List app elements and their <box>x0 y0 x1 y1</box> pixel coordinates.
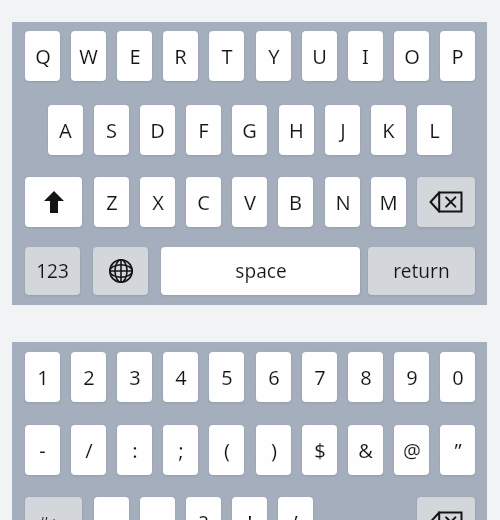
staticText: 8 <box>360 364 372 391</box>
button[interactable]: Q <box>25 31 60 81</box>
button[interactable]: Shift <box>25 177 82 227</box>
staticText: / <box>85 437 93 464</box>
button[interactable]: O <box>394 31 429 81</box>
staticText: X <box>152 189 164 216</box>
button[interactable]: / <box>71 425 106 475</box>
button[interactable]: M <box>371 177 406 227</box>
button[interactable]: ! <box>232 497 267 520</box>
staticText: 2 <box>83 364 95 391</box>
button[interactable]: #+= <box>25 497 82 520</box>
staticText: B <box>289 189 302 216</box>
staticText: L <box>429 117 440 144</box>
button[interactable]: @ <box>394 425 429 475</box>
staticText: P <box>451 43 464 70</box>
button[interactable]: N <box>325 177 360 227</box>
button[interactable]: - <box>25 425 60 475</box>
staticText: ! <box>247 509 253 520</box>
staticText: ’ <box>294 509 298 520</box>
button[interactable]: & <box>348 425 383 475</box>
button[interactable]: L <box>417 105 452 155</box>
button[interactable]: Backspace <box>417 177 475 227</box>
staticText: ” <box>454 437 462 464</box>
staticText: K <box>382 117 395 144</box>
button[interactable]: ) <box>256 425 291 475</box>
staticText: S <box>106 117 117 144</box>
staticText: return <box>393 258 450 284</box>
button[interactable]: 9 <box>394 352 429 402</box>
button[interactable]: . <box>94 497 129 520</box>
staticText: M <box>379 189 398 216</box>
staticText: Z <box>106 189 118 216</box>
button[interactable]: P <box>440 31 475 81</box>
staticText: @ <box>403 437 421 464</box>
button[interactable]: A <box>48 105 83 155</box>
button[interactable]: 5 <box>209 352 244 402</box>
button[interactable]: 123 <box>25 247 80 295</box>
button[interactable]: 1 <box>25 352 60 402</box>
button[interactable]: ; <box>163 425 198 475</box>
staticText: V <box>244 189 256 216</box>
button[interactable]: $ <box>302 425 337 475</box>
button[interactable]: Z <box>94 177 129 227</box>
button[interactable]: 0 <box>440 352 475 402</box>
button[interactable]: return <box>368 247 475 295</box>
button[interactable]: D <box>140 105 175 155</box>
button[interactable]: S <box>94 105 129 155</box>
button[interactable]: R <box>163 31 198 81</box>
button[interactable]: W <box>71 31 106 81</box>
staticText: O <box>404 43 420 70</box>
button[interactable]: 3 <box>117 352 152 402</box>
staticText: 7 <box>314 364 326 391</box>
button[interactable]: X <box>140 177 175 227</box>
button[interactable]: 6 <box>256 352 291 402</box>
button[interactable]: B <box>278 177 313 227</box>
button[interactable]: : <box>117 425 152 475</box>
staticText: 9 <box>406 364 418 391</box>
button[interactable]: T <box>209 31 244 81</box>
button[interactable]: Y <box>256 31 291 81</box>
staticText: C <box>197 189 210 216</box>
button[interactable]: G <box>232 105 267 155</box>
staticText: & <box>358 437 373 464</box>
staticText: ; <box>178 437 184 464</box>
staticText: Y <box>268 43 280 70</box>
button[interactable]: 4 <box>163 352 198 402</box>
button[interactable]: E <box>117 31 152 81</box>
staticText: ? <box>199 509 208 520</box>
staticText: 3 <box>129 364 141 391</box>
button[interactable]: 2 <box>71 352 106 402</box>
staticText: space <box>235 258 287 284</box>
button[interactable]: V <box>232 177 267 227</box>
staticText: J <box>340 117 346 144</box>
button[interactable]: J <box>325 105 360 155</box>
button[interactable]: , <box>140 497 175 520</box>
button[interactable]: space <box>161 247 360 295</box>
button[interactable]: 8 <box>348 352 383 402</box>
staticText: R <box>174 43 187 70</box>
staticText: 0 <box>452 364 464 391</box>
button[interactable]: I <box>348 31 383 81</box>
button[interactable]: ” <box>440 425 475 475</box>
button[interactable]: H <box>279 105 314 155</box>
button[interactable]: ( <box>209 425 244 475</box>
staticText: $ <box>314 437 326 464</box>
button[interactable]: C <box>186 177 221 227</box>
button[interactable]: F <box>186 105 221 155</box>
staticText: F <box>198 117 209 144</box>
button[interactable]: 7 <box>302 352 337 402</box>
staticText: 5 <box>221 364 233 391</box>
button[interactable]: Change keyboard <box>93 247 148 295</box>
staticText: ) <box>271 437 277 464</box>
staticText: T <box>221 43 233 70</box>
staticText: - <box>39 437 46 464</box>
button[interactable]: ’ <box>278 497 313 520</box>
button[interactable]: U <box>302 31 337 81</box>
staticText: N <box>335 189 351 216</box>
staticText: W <box>79 43 98 70</box>
button[interactable]: K <box>371 105 406 155</box>
button[interactable]: ? <box>186 497 221 520</box>
button[interactable]: Backspace <box>417 497 475 520</box>
staticText: 123 <box>36 258 69 284</box>
